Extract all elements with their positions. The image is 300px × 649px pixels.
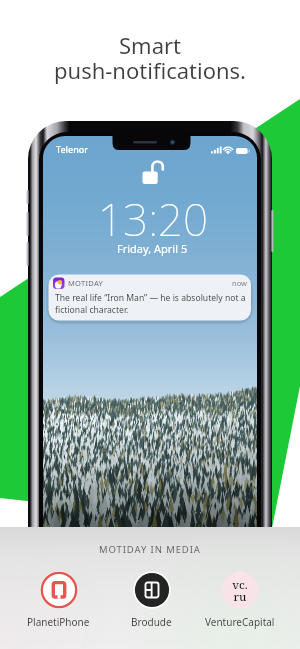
staticText: MOTIDAY IN MEDIA — [99, 543, 201, 556]
staticText: 13:20 — [98, 189, 208, 249]
staticText: Telenor — [56, 143, 89, 155]
staticText: now — [232, 278, 247, 288]
button[interactable]: VentureCapital — [195, 571, 285, 639]
button[interactable]: PlanetiPhone — [13, 571, 103, 639]
staticText: The real life “Iron Man” — he is absolut… — [55, 292, 246, 316]
staticText: Friday, April 5 — [117, 241, 188, 256]
staticText: MOTIDAY — [68, 278, 104, 288]
staticText: PlanetiPhone — [27, 615, 90, 629]
button[interactable]: Brodude — [106, 571, 196, 639]
staticText: VentureCapital — [205, 615, 275, 629]
staticText: Brodude — [131, 615, 172, 629]
staticText: Smart push-notifications. — [54, 30, 246, 86]
staticText: vc. ru — [232, 577, 248, 604]
